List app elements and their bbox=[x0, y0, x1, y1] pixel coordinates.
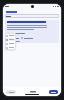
button[interactable] bbox=[5, 14, 59, 18]
button[interactable]: Menu option bbox=[5, 42, 16, 45]
button[interactable]: Menu option bbox=[5, 46, 16, 49]
button[interactable] bbox=[49, 90, 58, 94]
button[interactable] bbox=[21, 37, 33, 39]
button[interactable] bbox=[3, 9, 61, 14]
button[interactable]: Menu option bbox=[5, 34, 16, 37]
button[interactable]: Menu option bbox=[5, 38, 16, 41]
button[interactable] bbox=[7, 37, 19, 39]
button[interactable] bbox=[6, 90, 16, 94]
button[interactable] bbox=[29, 90, 37, 94]
